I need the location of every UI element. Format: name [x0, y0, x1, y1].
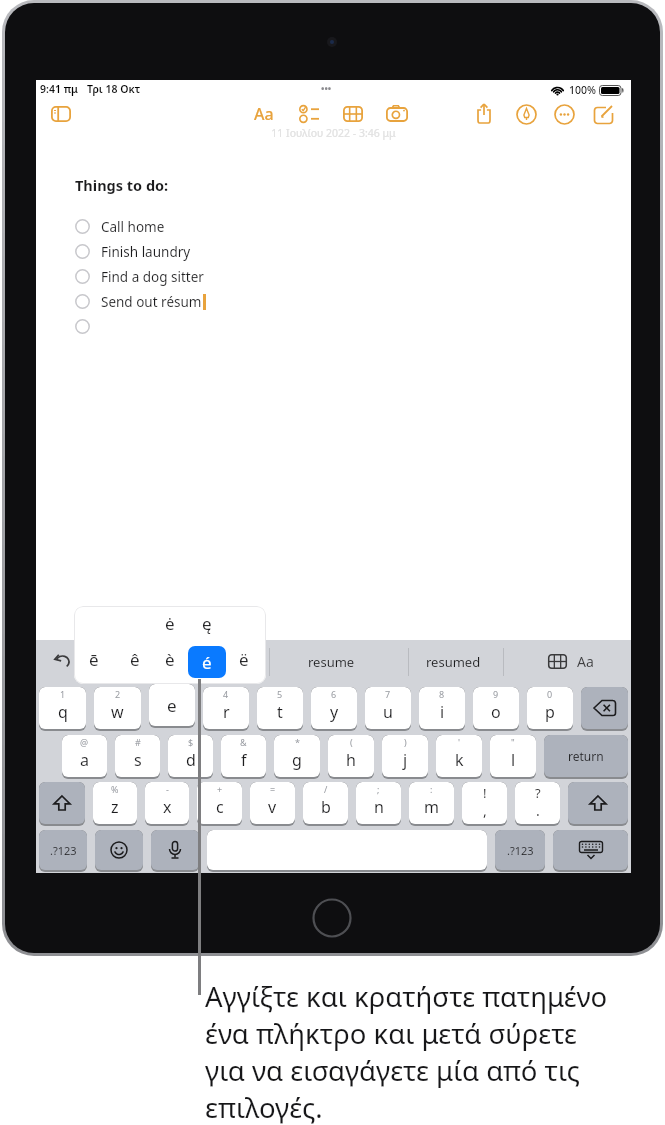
button[interactable] — [476, 103, 492, 124]
button[interactable] — [386, 105, 408, 122]
button[interactable]: ( — [328, 735, 374, 779]
button[interactable] — [39, 782, 85, 826]
button[interactable]: ' — [436, 735, 482, 779]
staticText: - — [166, 783, 169, 795]
staticText: . — [536, 801, 540, 820]
button[interactable]: Send out résum — [75, 289, 665, 314]
button[interactable]: 6 — [311, 687, 357, 731]
staticText: * — [295, 736, 300, 748]
staticText: f — [241, 749, 247, 771]
button[interactable]: 5 — [257, 687, 303, 731]
button[interactable]: Find a dog sitter — [75, 264, 665, 289]
button[interactable]: - — [145, 782, 189, 826]
button[interactable]: resume — [308, 653, 355, 671]
staticText: ! — [483, 784, 487, 802]
button[interactable] — [75, 314, 665, 339]
staticText: Finish laundry — [101, 243, 191, 261]
button[interactable]: = — [250, 782, 295, 826]
staticText: 100% — [569, 83, 596, 97]
button[interactable]: 4 — [203, 687, 249, 731]
button[interactable]: é — [188, 646, 226, 678]
staticText: ••• — [321, 82, 332, 94]
staticText: y — [330, 701, 339, 723]
button[interactable]: ) — [382, 735, 428, 779]
button[interactable] — [299, 105, 320, 123]
staticText: 6 — [331, 688, 337, 700]
button[interactable] — [312, 898, 352, 938]
staticText: # — [135, 736, 141, 748]
button[interactable]: Aa — [254, 103, 274, 125]
staticText: 9:41 πμ — [40, 82, 78, 96]
staticText: ę — [202, 612, 212, 635]
button[interactable] — [151, 830, 199, 872]
button[interactable]: * — [274, 735, 320, 779]
staticText: z — [111, 796, 119, 818]
button[interactable]: $ — [168, 735, 213, 779]
button[interactable] — [207, 830, 487, 872]
staticText: p — [545, 701, 555, 723]
staticText: 9 — [493, 688, 499, 700]
button[interactable] — [516, 104, 537, 125]
staticText: q — [58, 701, 68, 723]
button[interactable]: 0 — [527, 687, 573, 731]
button[interactable]: / — [303, 782, 348, 826]
button[interactable]: .?123 — [495, 830, 545, 872]
staticText: ē — [89, 648, 99, 671]
staticText: u — [383, 701, 393, 723]
staticText: t — [277, 701, 283, 723]
button[interactable]: 1 — [39, 687, 86, 731]
button[interactable]: ! — [462, 782, 507, 826]
staticText: 11 Ιουλίου 2022 - 3:46 μμ — [36, 126, 631, 140]
staticText: $ — [188, 736, 194, 748]
staticText: è — [165, 648, 175, 671]
button[interactable]: ; — [356, 782, 401, 826]
staticText: ( — [350, 736, 353, 748]
button[interactable]: 7 — [365, 687, 411, 731]
staticText: ė — [165, 612, 175, 635]
button[interactable]: & — [221, 735, 266, 779]
staticText: h — [346, 749, 356, 771]
button[interactable]: @ — [62, 735, 107, 779]
button[interactable]: return — [544, 735, 628, 779]
button[interactable]: + — [197, 782, 242, 826]
staticText: i — [440, 701, 445, 723]
button[interactable]: 2 — [94, 687, 141, 731]
staticText: a — [80, 749, 89, 771]
button[interactable]: resumed — [426, 653, 481, 671]
staticText: r — [223, 701, 230, 723]
button[interactable]: 8 — [419, 687, 465, 731]
staticText: .?123 — [50, 843, 77, 858]
button[interactable] — [51, 106, 71, 122]
staticText: ) — [404, 736, 407, 748]
staticText: x — [163, 796, 172, 818]
button[interactable]: % — [93, 782, 137, 826]
staticText: m — [424, 796, 439, 818]
button[interactable]: .?123 — [39, 830, 87, 872]
staticText: 8 — [439, 688, 445, 700]
staticText: = — [270, 783, 276, 795]
button[interactable]: ? — [515, 782, 560, 826]
staticText: b — [321, 796, 331, 818]
button[interactable]: e — [149, 684, 195, 728]
button[interactable]: Finish laundry — [75, 239, 665, 264]
button[interactable]: 9 — [473, 687, 519, 731]
staticText: 4 — [223, 688, 229, 700]
button[interactable]: : — [409, 782, 454, 826]
button[interactable] — [343, 106, 363, 122]
button[interactable]: " — [490, 735, 536, 779]
button[interactable] — [95, 830, 143, 872]
button[interactable] — [568, 782, 628, 826]
button[interactable] — [593, 104, 614, 125]
button[interactable] — [554, 104, 575, 125]
button[interactable]: Call home — [75, 214, 665, 239]
staticText: Call home — [101, 218, 165, 236]
staticText: c — [216, 796, 224, 818]
button[interactable] — [581, 687, 628, 731]
staticText: για να εισαγάγετε μία από τις — [205, 1052, 580, 1089]
staticText: e — [167, 694, 177, 717]
staticText: @ — [80, 736, 89, 748]
button[interactable] — [553, 830, 628, 872]
button[interactable]: # — [115, 735, 160, 779]
staticText: ' — [458, 736, 461, 748]
staticText: 0 — [547, 688, 553, 700]
